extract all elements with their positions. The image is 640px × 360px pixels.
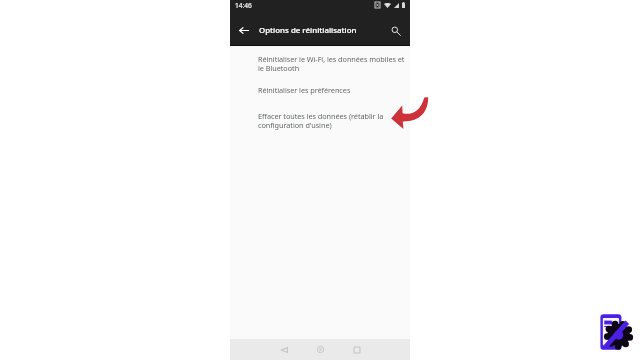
button[interactable]: Réinitialiser les préférences xyxy=(230,73,410,95)
button[interactable]: Search xyxy=(382,18,404,40)
staticText: Options de réinitialisation xyxy=(259,25,357,36)
button[interactable]: Effacer toutes les données (rétablir la … xyxy=(230,95,410,130)
staticText: Effacer toutes les données (rétablir la … xyxy=(258,111,407,130)
button[interactable]: Home xyxy=(310,339,330,360)
button[interactable]: Recents xyxy=(347,339,367,360)
button[interactable]: Back xyxy=(233,19,255,41)
staticText: Réinitialiser les préférences xyxy=(258,85,351,95)
staticText: 14:46 xyxy=(235,1,252,10)
button[interactable]: Back xyxy=(274,339,294,360)
staticText: Réinitialiser le Wi-Fi, les données mobi… xyxy=(258,54,407,73)
button[interactable]: Réinitialiser le Wi-Fi, les données mobi… xyxy=(230,48,410,73)
